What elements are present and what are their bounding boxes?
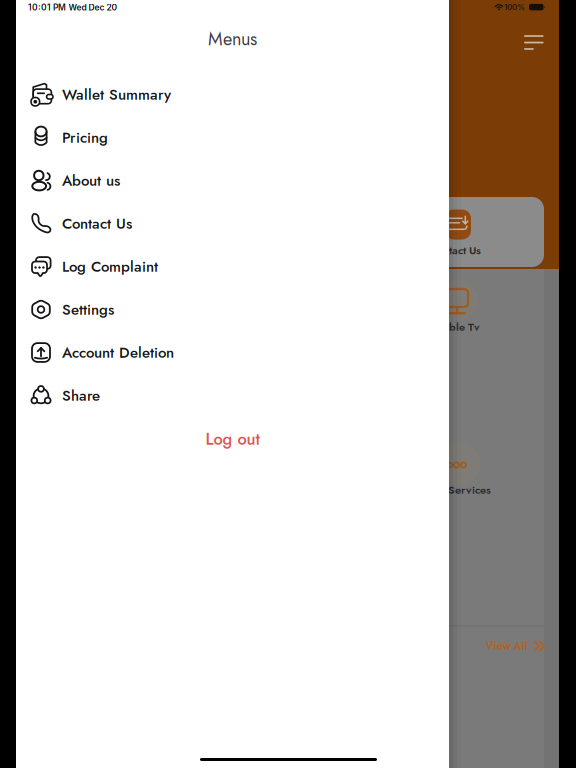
button[interactable]: Contact Us <box>16 202 449 245</box>
staticText: Cable Tv <box>435 319 480 335</box>
staticText: Contact Us <box>62 213 132 234</box>
button[interactable]: Log Complaint <box>16 245 449 288</box>
button[interactable]: View All <box>449 633 559 659</box>
staticText: Pricing <box>62 127 108 148</box>
staticText: 10:01 PM <box>28 2 66 13</box>
staticText: Share <box>62 385 100 406</box>
button[interactable]: Pricing <box>16 116 449 159</box>
button[interactable]: About us <box>16 159 449 202</box>
button[interactable]: Wallet Summary <box>16 73 449 116</box>
staticText: Wallet Summary <box>62 84 171 105</box>
staticText: About us <box>62 170 120 191</box>
button[interactable]: Account Deletion <box>16 331 449 374</box>
staticText: Wed Dec 20 <box>68 2 117 13</box>
staticText: Account Deletion <box>62 342 174 363</box>
staticText: Contact Us <box>429 243 481 258</box>
staticText: Log Complaint <box>62 256 158 277</box>
button[interactable]: Log out <box>172 421 292 457</box>
button[interactable]: Share <box>16 374 449 417</box>
staticText: Services <box>448 482 491 498</box>
staticText: Log out <box>205 427 259 451</box>
staticText: Settings <box>62 299 114 320</box>
button[interactable]: Menu <box>524 35 544 50</box>
staticText: 100% <box>504 2 525 12</box>
staticText: View All <box>485 638 527 654</box>
staticText: Menus <box>208 26 257 52</box>
button[interactable]: Settings <box>16 288 449 331</box>
